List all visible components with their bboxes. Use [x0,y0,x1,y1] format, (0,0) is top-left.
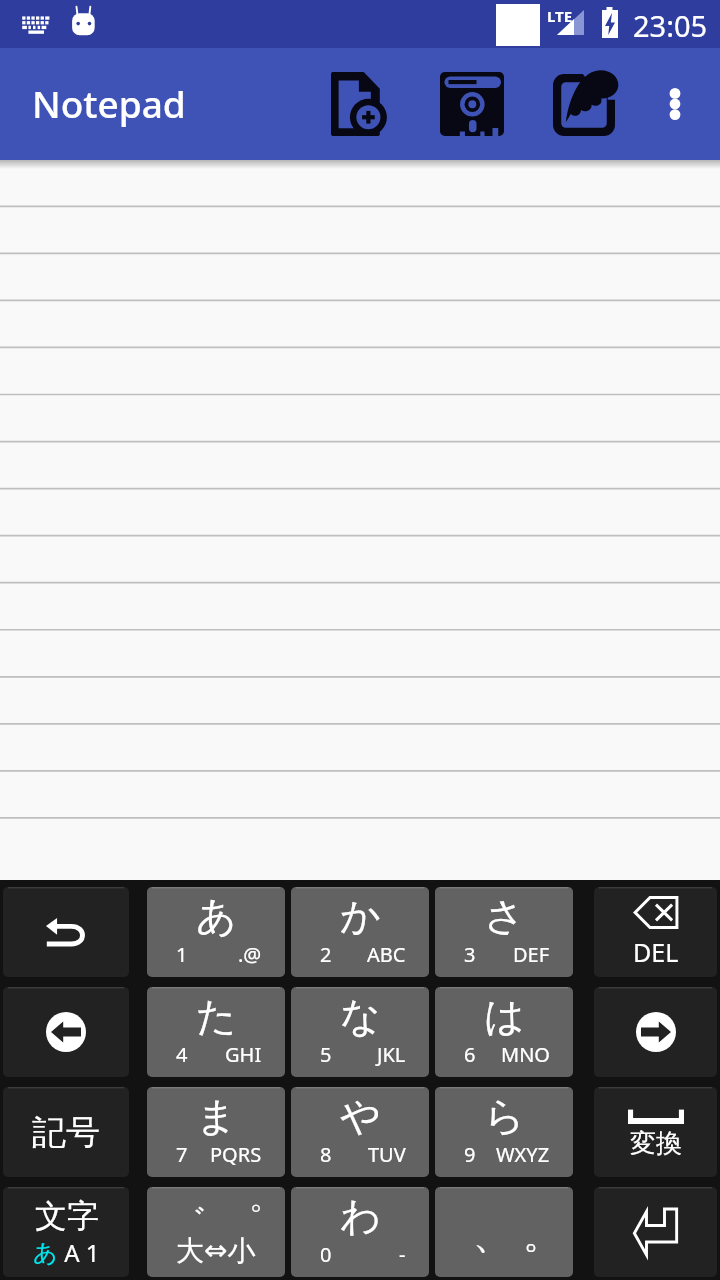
staticText: あ [196,891,237,941]
button[interactable]: moji [3,1187,129,1277]
button[interactable]: や [291,1087,429,1177]
staticText: - [399,1241,406,1268]
staticText: Notepad [32,78,186,128]
staticText: や [340,1091,381,1141]
staticText: A 1 [58,1236,100,1269]
staticText: 1 [176,941,188,968]
staticText: 3 [464,941,476,968]
staticText: 4 [176,1041,188,1068]
staticText: ABC [367,941,406,968]
button[interactable]: undo [3,887,129,977]
staticText: JKL [377,1041,406,1068]
staticText: 8 [320,1141,332,1168]
staticText: 6 [464,1041,476,1068]
staticText: 7 [176,1141,188,1168]
button[interactable]: わ [291,1187,429,1277]
button[interactable]: さ [435,887,573,977]
staticText: 、 [473,1211,511,1259]
staticText: ゛ [170,1199,207,1244]
staticText: 5 [320,1041,332,1068]
button[interactable]: right [594,987,717,1077]
staticText: ま [196,1091,237,1141]
button[interactable]: な [291,987,429,1077]
button[interactable]: Edit note [539,62,628,146]
staticText: GHI [225,1041,262,1068]
button[interactable]: あ [147,887,285,977]
staticText: WXYZ [496,1141,550,1168]
button[interactable]: た [147,987,285,1077]
staticText: 変換 [630,1127,682,1160]
button[interactable]: ら [435,1087,573,1177]
staticText: .@ [238,941,262,968]
button[interactable]: daisho [147,1187,285,1277]
staticText: 2 [320,941,332,968]
button[interactable]: More options [646,62,704,146]
button[interactable]: henkan [594,1087,717,1177]
button[interactable]: Save [427,62,516,146]
staticText: わ [340,1191,381,1241]
staticText: 23:05 [633,6,708,45]
staticText: LTE [547,6,573,26]
staticText: 。 [523,1211,561,1259]
staticText: さ [484,891,525,941]
staticText: な [340,991,381,1041]
button[interactable]: left [3,987,129,1077]
staticText: PQRS [210,1141,262,1168]
button[interactable]: 記号 [3,1087,129,1177]
button[interactable]: enter [594,1187,717,1277]
staticText: 0 [320,1241,332,1268]
button[interactable]: del [594,887,717,977]
staticText: か [340,891,381,941]
staticText: は [484,991,525,1041]
button[interactable]: punct [435,1187,573,1277]
staticText: DEF [513,941,550,968]
button[interactable]: か [291,887,429,977]
button[interactable]: New note [315,62,403,146]
staticText: た [196,991,237,1041]
staticText: 9 [464,1141,476,1168]
staticText: 文字 [35,1196,99,1236]
button[interactable]: は [435,987,573,1077]
staticText: ゜ [226,1199,263,1244]
staticText: DEL [633,935,679,969]
staticText: 記号 [32,1111,100,1154]
staticText: あ [33,1238,58,1268]
button[interactable]: ま [147,1087,285,1177]
staticText: TUV [368,1141,406,1168]
staticText: 大⇔小 [176,1233,256,1268]
staticText: ら [484,1091,525,1141]
staticText: MNO [501,1041,550,1068]
